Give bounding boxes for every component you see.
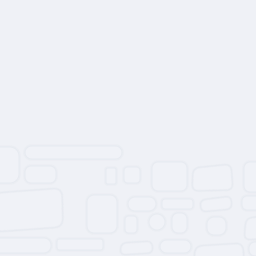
button[interactable]: Key 3 xyxy=(103,165,118,186)
